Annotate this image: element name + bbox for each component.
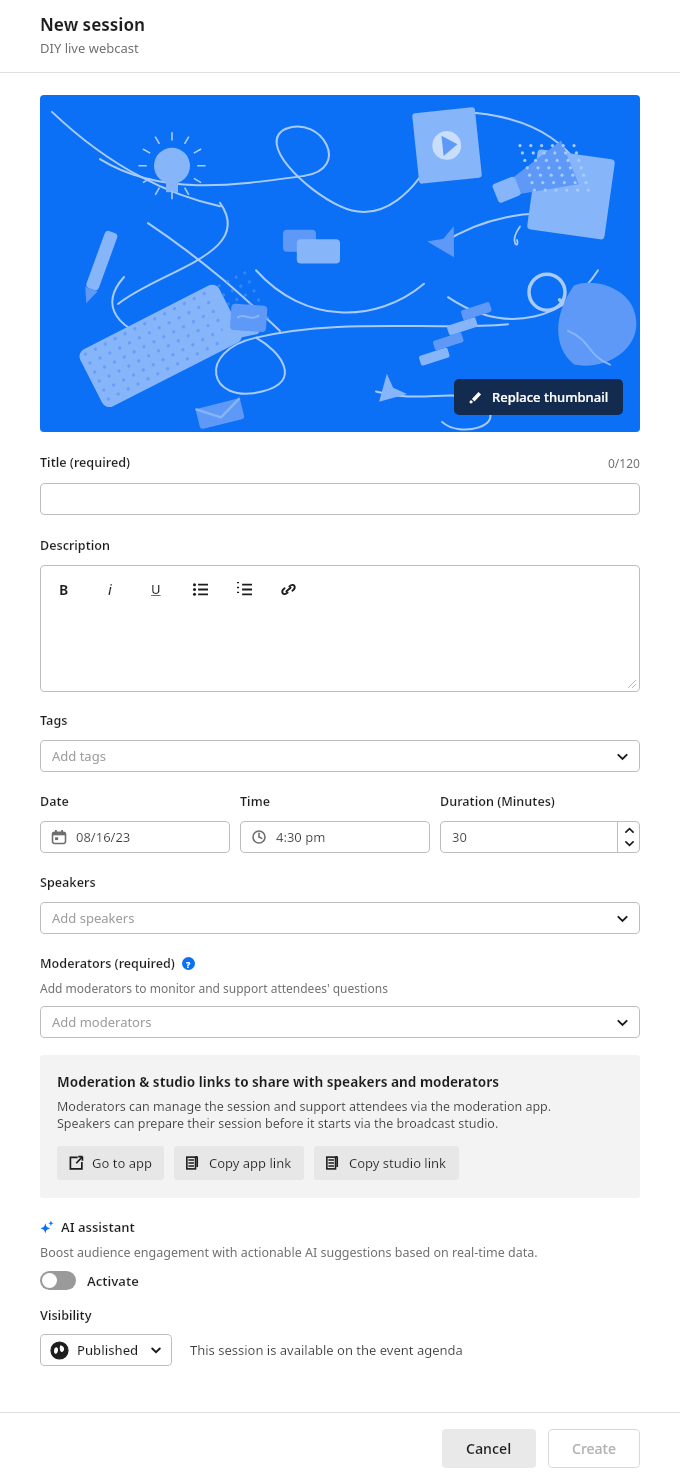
button[interactable]: Published — [40, 1334, 172, 1366]
staticText: Add tags — [52, 747, 106, 765]
button[interactable]: Numbered list — [234, 579, 254, 599]
button[interactable]: Underline — [146, 579, 166, 599]
button[interactable]: Increase — [620, 824, 638, 837]
staticText: Moderators can manage the session and su… — [57, 1098, 552, 1115]
staticText: Add speakers — [52, 909, 135, 927]
staticText: Speakers — [40, 874, 96, 891]
button[interactable]: 4:30 pm — [240, 821, 430, 853]
button[interactable]: Copy app link — [174, 1146, 304, 1180]
staticText: Moderation & studio links to share with … — [57, 1073, 500, 1091]
button[interactable]: Italic — [100, 579, 120, 599]
staticText: Copy studio link — [349, 1154, 447, 1172]
button[interactable]: Replace thumbnail — [454, 379, 623, 415]
staticText: Published — [77, 1341, 139, 1359]
button[interactable]: Activate — [40, 1271, 139, 1290]
staticText: Visibility — [40, 1307, 92, 1324]
staticText: Boost audience engagement with actionabl… — [40, 1244, 538, 1261]
button[interactable]: Create — [548, 1429, 640, 1468]
button[interactable]: Add moderators — [40, 1006, 640, 1038]
staticText: Description — [40, 537, 110, 554]
staticText: 4:30 pm — [276, 828, 326, 846]
staticText: AI assistant — [61, 1218, 135, 1236]
staticText: ? — [186, 958, 191, 970]
staticText: U — [151, 580, 161, 598]
button[interactable]: Go to app — [57, 1146, 164, 1180]
staticText: This session is available on the event a… — [190, 1341, 463, 1359]
button[interactable]: Help — [182, 957, 195, 970]
staticText: Title (required) — [40, 454, 131, 471]
staticText: Create — [572, 1439, 616, 1458]
staticText: 30 — [452, 828, 467, 846]
staticText: Moderators (required) — [40, 955, 175, 972]
button[interactable]: Add speakers — [40, 902, 640, 934]
button[interactable]: Bold — [54, 579, 74, 599]
button[interactable]: 08/16/23 — [40, 821, 230, 853]
staticText: 08/16/23 — [76, 828, 131, 846]
staticText: New session — [40, 13, 146, 36]
button[interactable]: Insert link — [278, 579, 298, 599]
button[interactable]: Bulleted list — [190, 579, 210, 599]
staticText: Time — [240, 793, 270, 810]
staticText: Replace thumbnail — [492, 388, 609, 406]
staticText: Speakers can prepare their session befor… — [57, 1115, 499, 1132]
button[interactable]: Decrease — [620, 837, 638, 850]
button[interactable] — [40, 483, 640, 515]
staticText: Cancel — [466, 1439, 512, 1458]
staticText: Go to app — [92, 1154, 152, 1172]
staticText: Add moderators to monitor and support at… — [40, 980, 388, 996]
staticText: Activate — [87, 1272, 139, 1290]
staticText: DIY live webcast — [40, 39, 139, 57]
staticText: Date — [40, 793, 69, 810]
button[interactable]: Copy studio link — [314, 1146, 459, 1180]
button[interactable]: Cancel — [442, 1429, 536, 1468]
button[interactable]: 30 — [440, 821, 640, 853]
staticText: i — [108, 580, 112, 599]
button[interactable]: Add tags — [40, 740, 640, 772]
staticText: Duration (Minutes) — [440, 793, 555, 810]
staticText: Add moderators — [52, 1013, 152, 1031]
staticText: 0/120 — [608, 455, 640, 471]
staticText: B — [59, 580, 69, 599]
staticText: Copy app link — [209, 1154, 292, 1172]
staticText: Tags — [40, 712, 68, 729]
